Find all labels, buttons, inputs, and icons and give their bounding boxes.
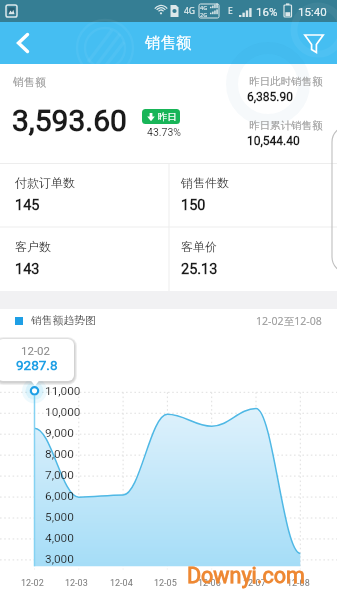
staticText: E [228, 5, 233, 17]
staticText: 昨日累计销售额 [249, 119, 323, 132]
staticText: 昨日 [158, 111, 177, 123]
staticText: 12-03 [65, 578, 88, 589]
staticText: 8,000 [45, 447, 74, 461]
staticText: 销售额 [13, 75, 46, 89]
staticText: 销售额趋势图 [31, 314, 96, 328]
staticText: 12-02 [21, 344, 51, 357]
staticText: 付款订单数 [15, 175, 75, 190]
staticText: 150 [181, 197, 206, 214]
staticText: 15:40 [298, 5, 327, 18]
staticText: 12-04 [110, 578, 133, 589]
staticText: 25.13 [181, 261, 218, 278]
staticText: 客单价 [181, 239, 217, 254]
staticText: 7,000 [45, 468, 74, 482]
staticText: 4,000 [45, 531, 74, 545]
staticText: 11,000 [45, 384, 81, 398]
staticText: 145 [15, 197, 40, 214]
staticText: 昨日此时销售额 [249, 75, 323, 88]
staticText: Downyi.com [187, 563, 305, 588]
staticText: 销售件数 [181, 175, 229, 190]
staticText: 3,000 [45, 552, 74, 566]
staticText: 2G [200, 11, 208, 18]
staticText: 4G [200, 4, 208, 11]
button[interactable]: Back [0, 22, 46, 64]
button[interactable]: Filter [291, 22, 337, 64]
staticText: 12-06 [198, 578, 221, 589]
staticText: 12-05 [154, 578, 177, 589]
staticText: 12-02至12-08 [256, 314, 322, 328]
staticText: 销售额 [145, 33, 192, 53]
staticText: 5,000 [45, 510, 74, 524]
staticText: 3,593.60 [12, 103, 127, 138]
staticText: 6,000 [45, 489, 74, 503]
staticText: 10,544.40 [247, 134, 300, 148]
staticText: 4G [184, 5, 196, 17]
button[interactable]: 昨日 [142, 109, 180, 124]
staticText: 12-02 [21, 578, 44, 589]
staticText: 6,385.90 [247, 90, 293, 104]
staticText: 16% [256, 5, 278, 18]
staticText: 9,000 [45, 426, 74, 440]
staticText: 43.73% [147, 126, 182, 138]
staticText: 客户数 [15, 239, 51, 254]
staticText: 9287.8 [16, 357, 58, 373]
staticText: 10,000 [45, 405, 81, 419]
staticText: 12-08 [287, 578, 310, 589]
staticText: 143 [15, 261, 40, 278]
staticText: 12-07 [243, 578, 266, 589]
